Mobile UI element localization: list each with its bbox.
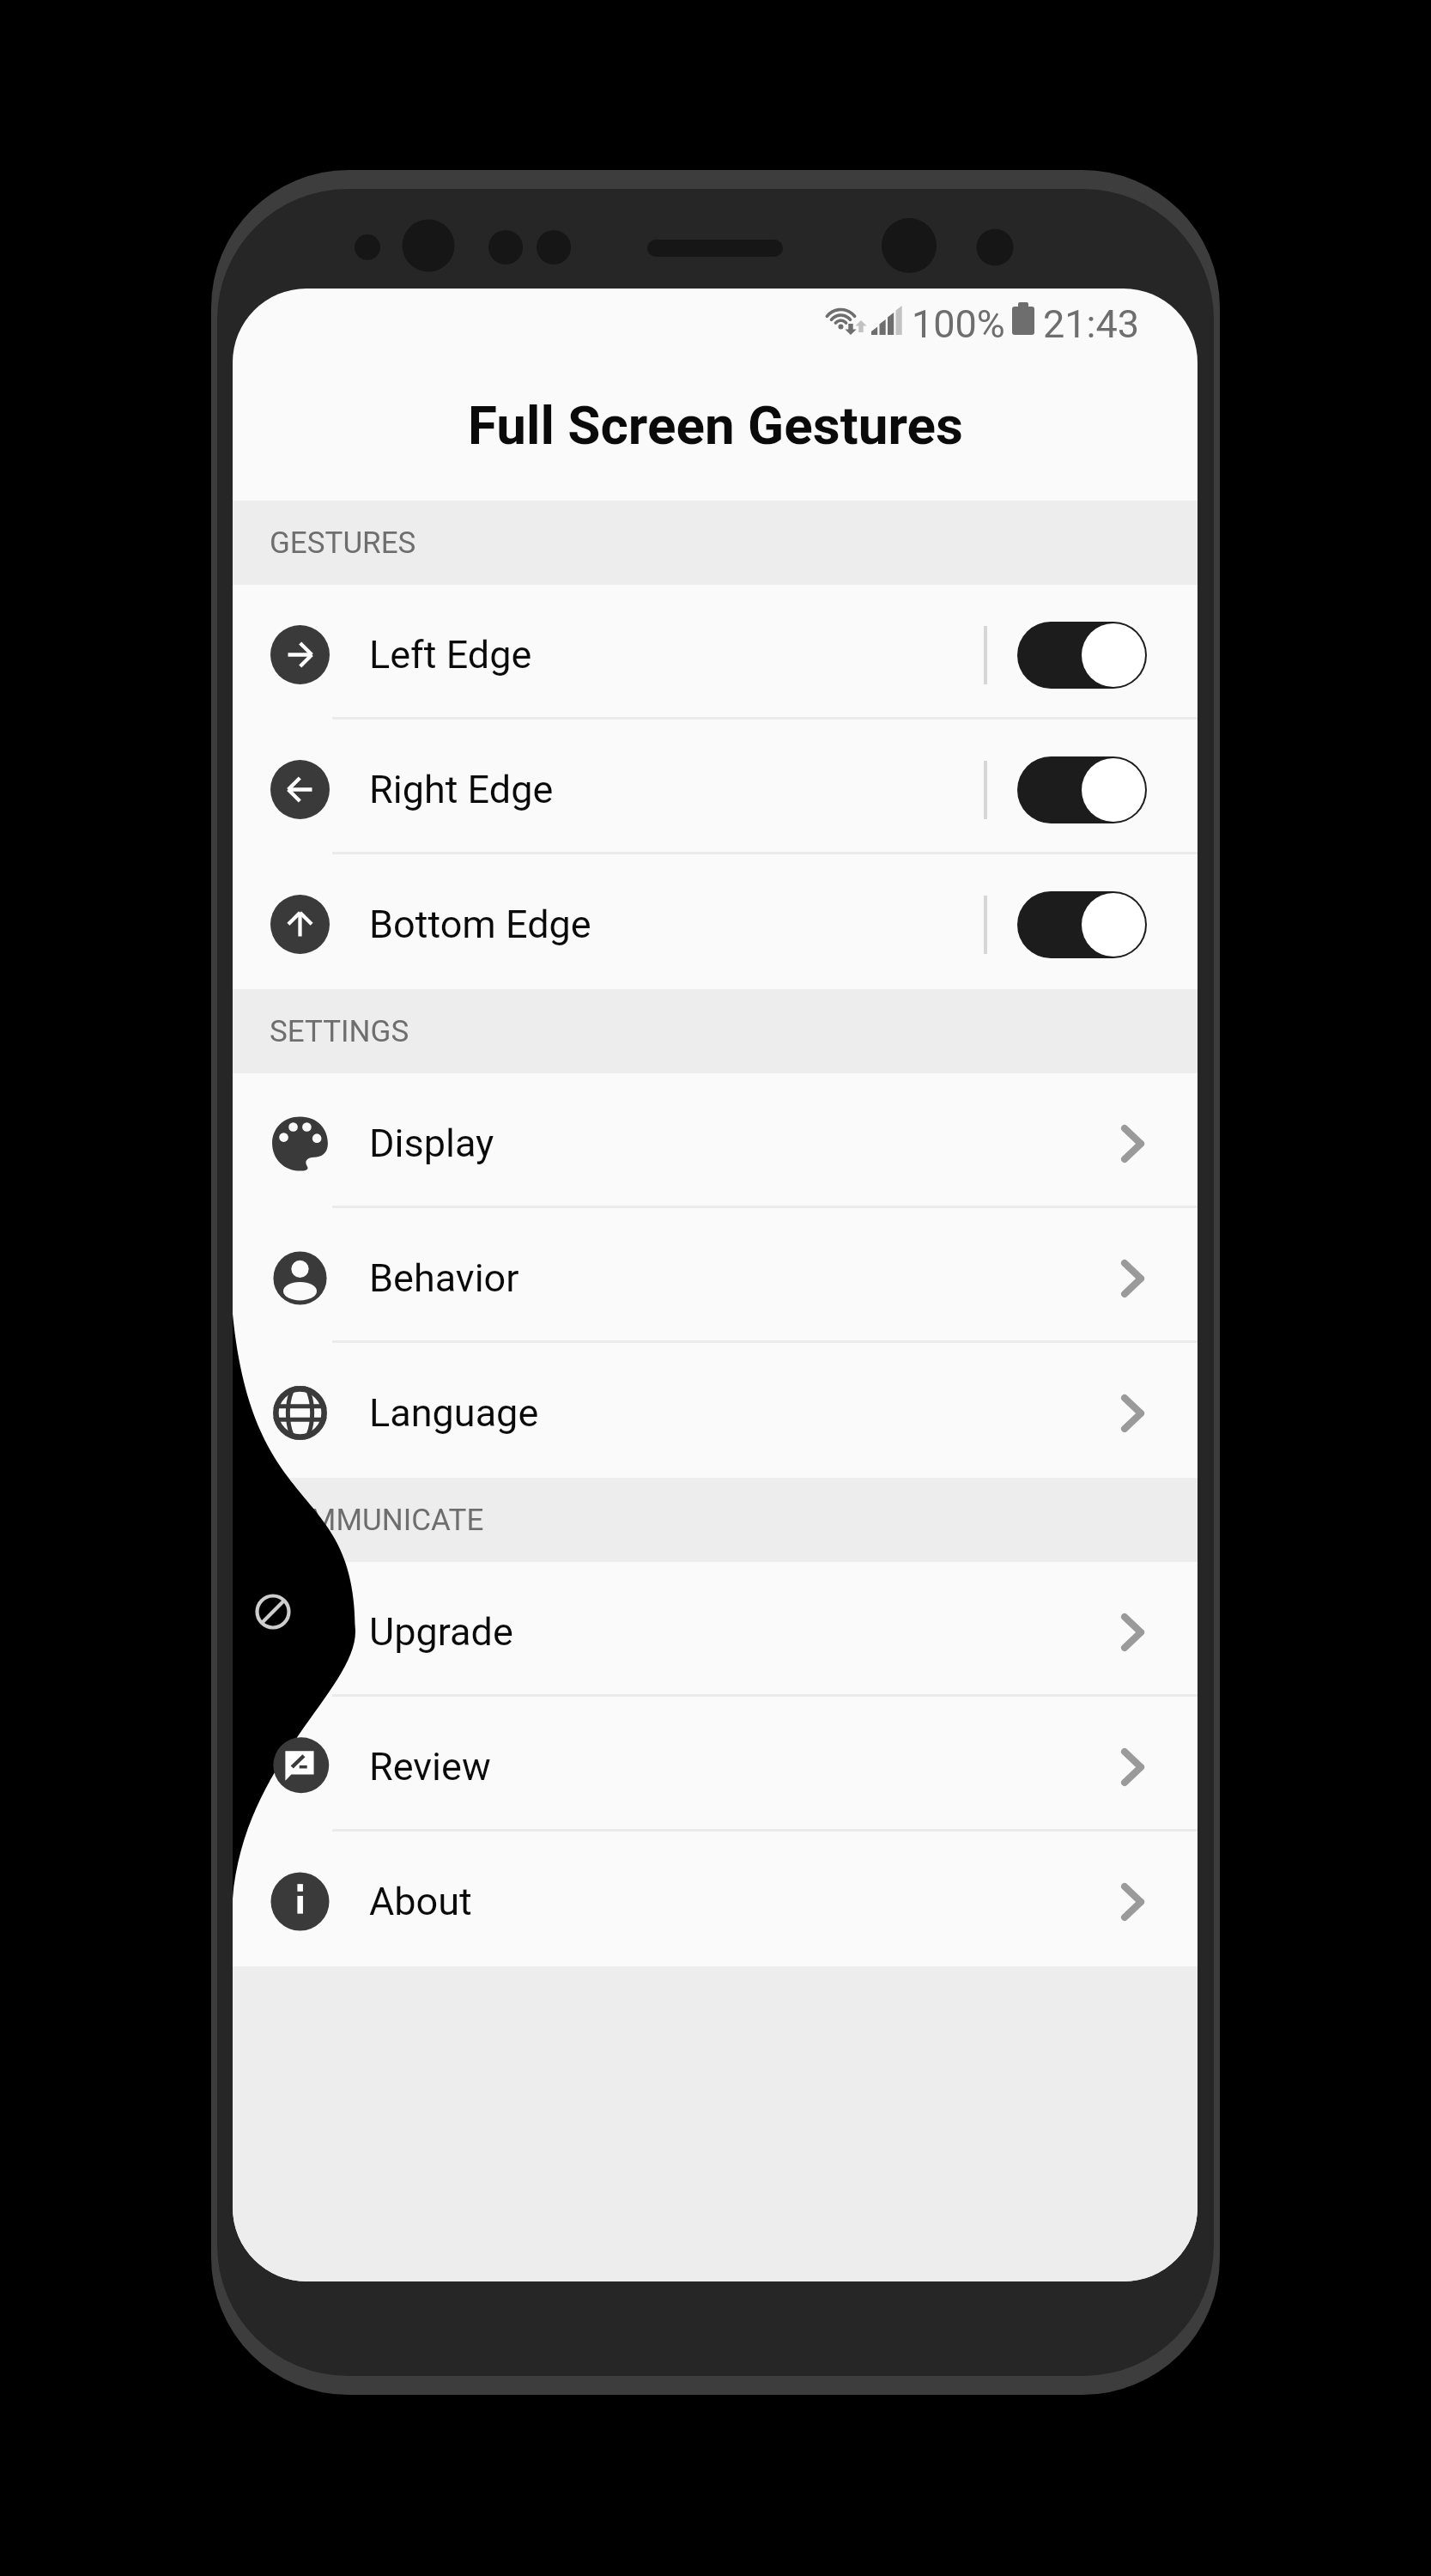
staticText: Upgrade: [369, 1609, 513, 1655]
button[interactable]: Upgrade: [233, 1562, 1198, 1697]
staticText: Bottom Edge: [369, 902, 591, 947]
button[interactable]: Language: [233, 1343, 1198, 1478]
staticText: Behavior: [369, 1255, 519, 1301]
button[interactable]: Behavior: [233, 1208, 1198, 1343]
button[interactable]: Toggle Bottom Edge: [1017, 891, 1147, 958]
button[interactable]: About: [233, 1832, 1198, 1966]
staticText: SETTINGS: [270, 1014, 409, 1049]
staticText: 100%: [912, 301, 1005, 347]
staticText: Full Screen Gestures: [468, 394, 963, 457]
staticText: Language: [369, 1390, 539, 1436]
staticText: Display: [369, 1121, 494, 1166]
button[interactable]: Right Edge: [233, 720, 1198, 854]
button[interactable]: Left Edge: [233, 585, 1198, 720]
staticText: COMMUNICATE: [270, 1503, 484, 1538]
staticText: 21:43: [1043, 301, 1140, 347]
staticText: Right Edge: [369, 767, 554, 812]
button[interactable]: Display: [233, 1073, 1198, 1208]
staticText: Review: [369, 1744, 491, 1789]
staticText: Left Edge: [369, 632, 532, 677]
button[interactable]: Toggle Left Edge: [1017, 622, 1147, 689]
staticText: About: [369, 1879, 472, 1924]
button[interactable]: Review: [233, 1697, 1198, 1832]
button[interactable]: Bottom Edge: [233, 854, 1198, 989]
button[interactable]: Toggle Right Edge: [1017, 756, 1147, 823]
staticText: GESTURES: [270, 526, 416, 561]
